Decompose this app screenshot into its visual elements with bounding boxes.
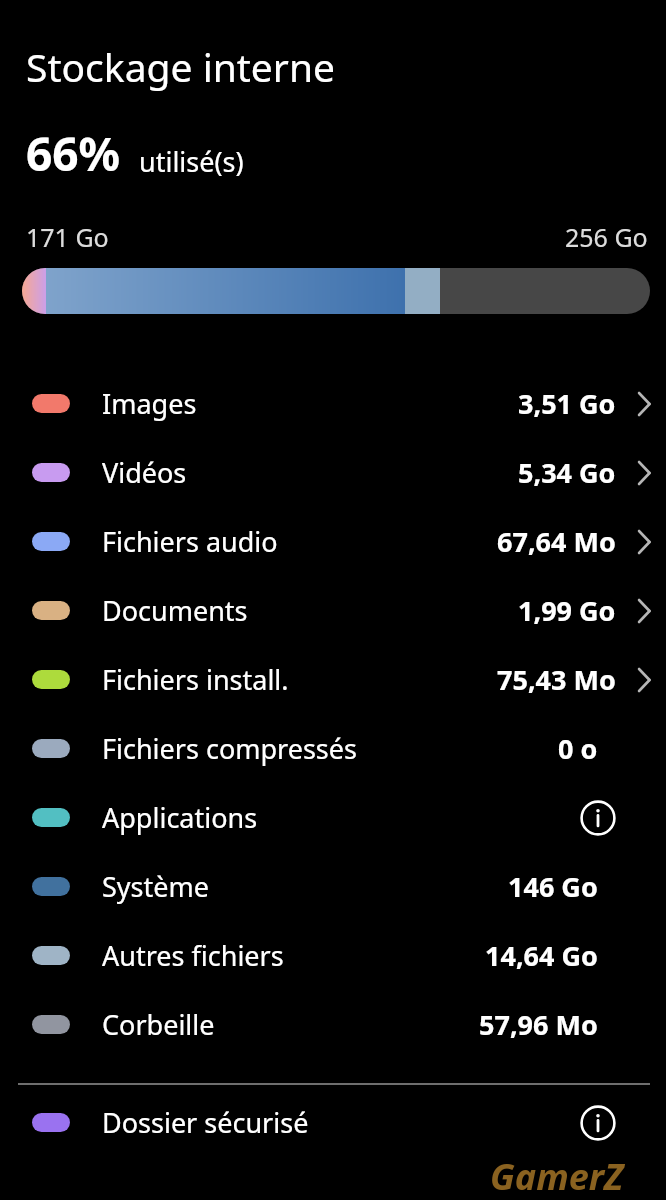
other: Ouvrir Fichiers audio — [632, 525, 654, 559]
button[interactable]: Informations sur Applications — [572, 792, 624, 844]
staticText: 256 Go — [565, 220, 648, 254]
staticText: 75,43 Mo — [497, 661, 616, 698]
button[interactable]: Fichiers audio — [0, 507, 666, 576]
button[interactable]: Corbeille — [0, 990, 666, 1059]
other: Ouvrir Images — [632, 387, 654, 421]
staticText: Fichiers audio — [102, 523, 278, 560]
staticText: Système — [102, 868, 209, 905]
staticText: 57,96 Mo — [479, 1006, 598, 1043]
button[interactable]: Applications — [0, 783, 666, 852]
staticText: Corbeille — [102, 1006, 215, 1043]
staticText: 0 o — [558, 730, 598, 767]
staticText: Documents — [102, 592, 248, 629]
staticText: Fichiers install. — [102, 661, 289, 698]
button[interactable]: Autres fichiers — [0, 921, 666, 990]
staticText: Dossier sécurisé — [102, 1104, 309, 1141]
staticText: Autres fichiers — [102, 937, 284, 974]
other: Ouvrir Fichiers install. — [632, 663, 654, 697]
button[interactable]: Fichiers install. — [0, 645, 666, 714]
button[interactable]: Images — [0, 369, 666, 438]
staticText: 5,34 Go — [518, 454, 616, 491]
other: Ouvrir Vidéos — [632, 456, 654, 490]
staticText: 1,99 Go — [518, 592, 616, 629]
staticText: 3,51 Go — [518, 385, 616, 422]
button[interactable]: Fichiers compressés — [0, 714, 666, 783]
button[interactable]: Système — [0, 852, 666, 921]
staticText: GamerZ — [490, 1152, 624, 1200]
staticText: Images — [102, 385, 197, 422]
staticText: 171 Go — [26, 220, 109, 254]
staticText: Vidéos — [102, 454, 187, 491]
staticText: Stockage interne — [26, 40, 336, 93]
staticText: Fichiers compressés — [102, 730, 357, 767]
staticText: 66% — [26, 122, 121, 185]
button[interactable]: Dossier sécurisé — [0, 1088, 666, 1157]
staticText: utilisé(s) — [139, 143, 244, 180]
staticText: 67,64 Mo — [497, 523, 616, 560]
staticText: Applications — [102, 799, 258, 836]
staticText: 146 Go — [508, 868, 598, 905]
button[interactable]: Documents — [0, 576, 666, 645]
staticText: 14,64 Go — [485, 937, 598, 974]
other: Ouvrir Documents — [632, 594, 654, 628]
button[interactable]: Vidéos — [0, 438, 666, 507]
button[interactable]: Informations sur Dossier sécurisé — [572, 1097, 624, 1149]
